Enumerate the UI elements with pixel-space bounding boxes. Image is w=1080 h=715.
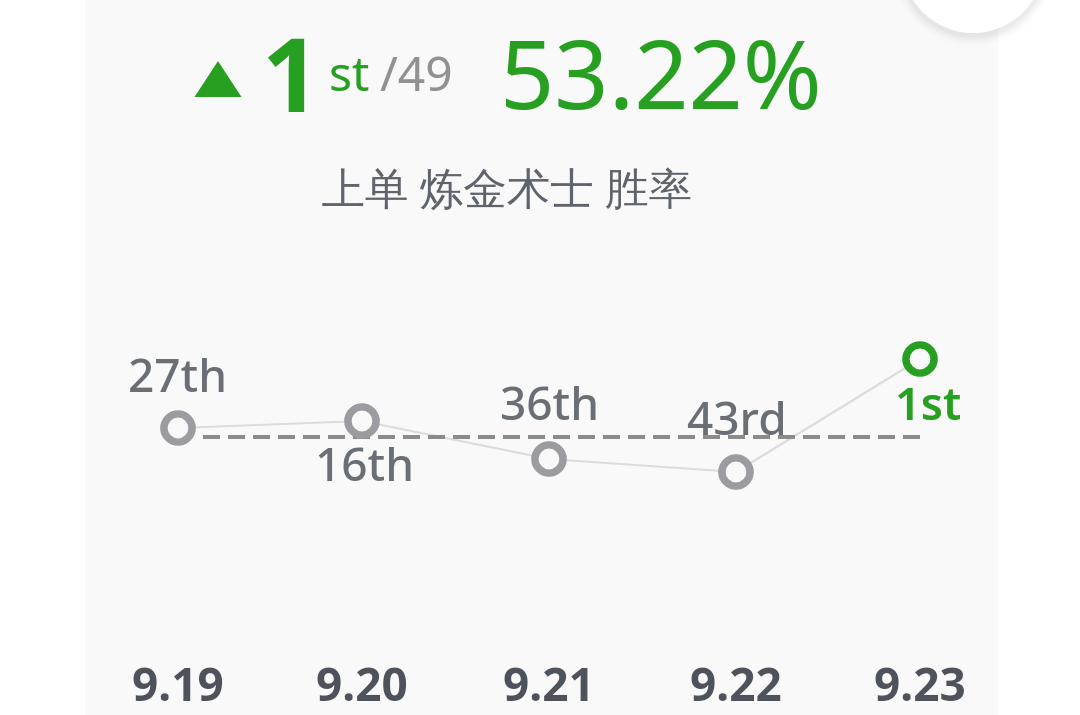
button[interactable]: 9.22 43rd (710, 446, 762, 498)
button[interactable]: 上单 炼金术士 胜率 53.22%, ranked 1st of 49, tre… (85, 0, 998, 715)
button[interactable]: 9.21 36th (523, 433, 575, 485)
button[interactable]: 9.23 1st (894, 333, 946, 385)
button[interactable]: 9.20 16th (336, 395, 388, 447)
button[interactable]: 9.19 27th (152, 402, 204, 454)
